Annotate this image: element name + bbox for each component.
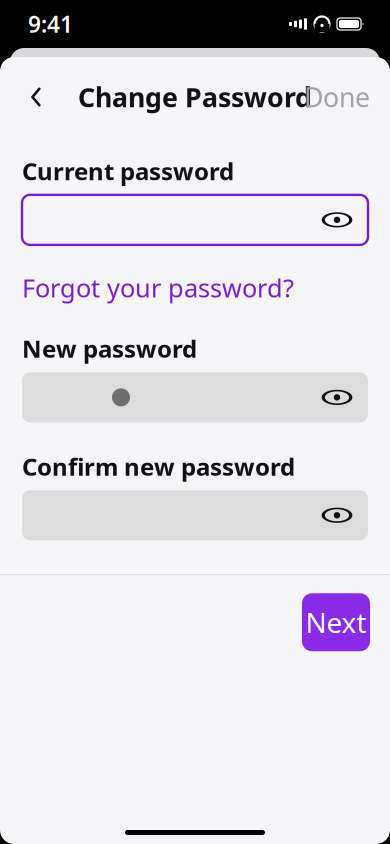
- staticText: Done: [304, 79, 370, 115]
- staticText: Change Password: [78, 79, 312, 115]
- staticText: Forgot your password?: [22, 271, 294, 304]
- staticText: Current password: [22, 155, 234, 187]
- button[interactable]: Forgot your password?: [22, 271, 294, 304]
- staticText: New password: [22, 332, 197, 364]
- staticText: 9:41: [28, 9, 73, 39]
- button[interactable]: Done: [298, 75, 376, 119]
- staticText: Next: [305, 604, 366, 641]
- button[interactable]: Back: [14, 75, 58, 119]
- button[interactable]: Next: [302, 593, 370, 651]
- button[interactable]: [22, 195, 368, 245]
- button[interactable]: [22, 372, 368, 422]
- staticText: Confirm new password: [22, 450, 295, 482]
- button[interactable]: [22, 490, 368, 540]
